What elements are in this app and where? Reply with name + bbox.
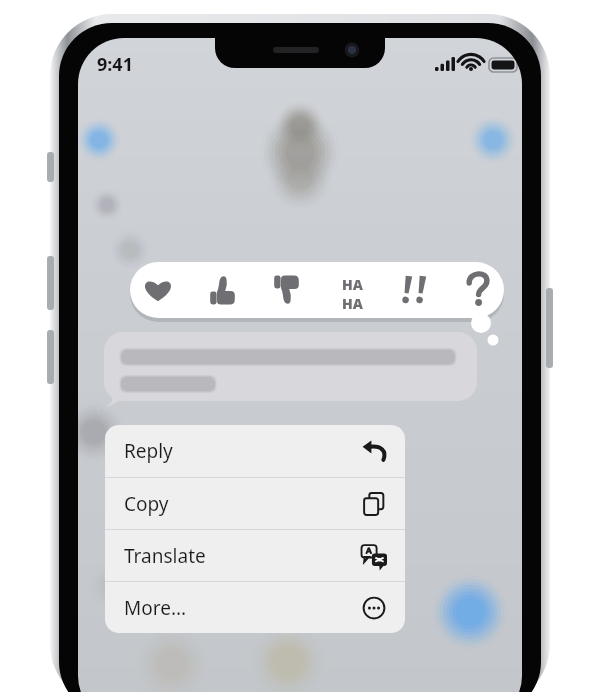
button[interactable]: Translate (105, 530, 405, 581)
button[interactable]: Love (132, 262, 184, 318)
staticText: More... (124, 595, 187, 621)
button[interactable]: Reply (105, 425, 405, 477)
button[interactable]: Haha (324, 262, 376, 318)
staticText: Reply (124, 438, 173, 464)
button[interactable]: More... (105, 582, 405, 633)
staticText: Translate (124, 543, 206, 569)
button[interactable]: Question (452, 262, 504, 318)
staticText: Copy (124, 491, 169, 517)
button[interactable]: Thumbs up (196, 262, 248, 318)
staticText: HA (342, 294, 363, 313)
button[interactable]: Copy (105, 478, 405, 529)
staticText: 9:41 (97, 52, 133, 77)
button[interactable]: Exclamation (388, 262, 440, 318)
staticText: HA (342, 275, 363, 294)
button[interactable]: Thumbs down (260, 262, 312, 318)
